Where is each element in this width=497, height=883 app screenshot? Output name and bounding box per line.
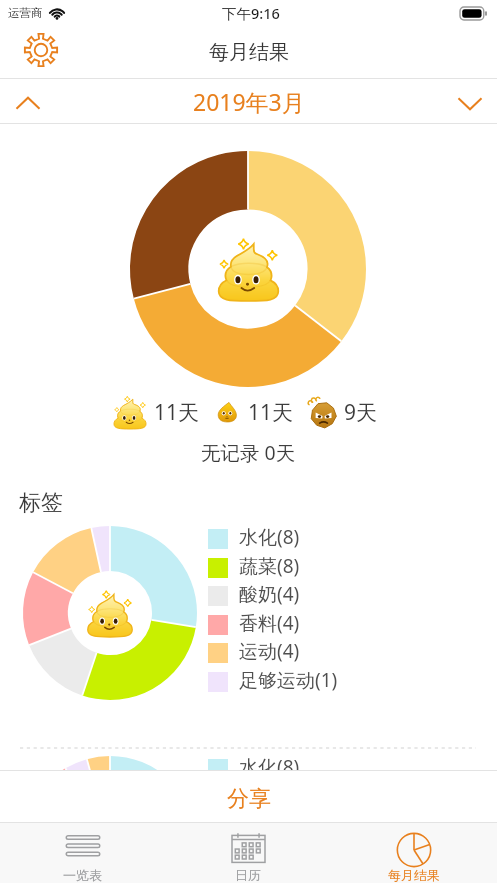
staticText: 蔬菜(8) xyxy=(239,553,300,578)
button[interactable]: 水化(8) xyxy=(208,526,300,551)
staticText: 标签 xyxy=(19,489,63,517)
staticText: 运动(4) xyxy=(239,638,300,663)
staticText: 每月结果 xyxy=(209,40,289,65)
button[interactable]: 分享 xyxy=(0,771,497,822)
staticText: 11天 xyxy=(248,398,294,427)
button[interactable]: Expand xyxy=(448,81,492,125)
button[interactable]: 一览表 xyxy=(0,823,165,883)
staticText: 分享 xyxy=(227,785,271,813)
button[interactable]: 酸奶(4) xyxy=(208,583,300,608)
button[interactable]: 每月结果 xyxy=(331,823,497,883)
button[interactable]: 水化(8) xyxy=(208,756,300,771)
staticText: 2019年3月 xyxy=(193,86,305,117)
button[interactable]: 运动(4) xyxy=(208,640,300,665)
button[interactable]: 足够运动(1) xyxy=(208,669,338,694)
button[interactable]: Settings xyxy=(18,27,64,73)
staticText: 水化(8) xyxy=(239,754,300,771)
button[interactable]: 日历 xyxy=(165,823,331,883)
staticText: 下午9:16 xyxy=(222,3,280,23)
staticText: 日历 xyxy=(235,867,261,883)
staticText: 一览表 xyxy=(63,867,102,883)
staticText: 酸奶(4) xyxy=(239,581,300,606)
staticText: 香料(4) xyxy=(239,610,300,635)
staticText: 足够运动(1) xyxy=(239,667,338,692)
staticText: 每月结果 xyxy=(388,867,440,883)
staticText: 无记录 0天 xyxy=(201,439,296,466)
staticText: 9天 xyxy=(344,398,378,427)
button[interactable]: 蔬菜(8) xyxy=(208,555,300,580)
staticText: 运营商 xyxy=(8,6,43,20)
button[interactable]: 香料(4) xyxy=(208,612,300,637)
button[interactable]: Collapse xyxy=(6,82,50,126)
staticText: 11天 xyxy=(154,398,200,427)
staticText: 水化(8) xyxy=(239,524,300,549)
